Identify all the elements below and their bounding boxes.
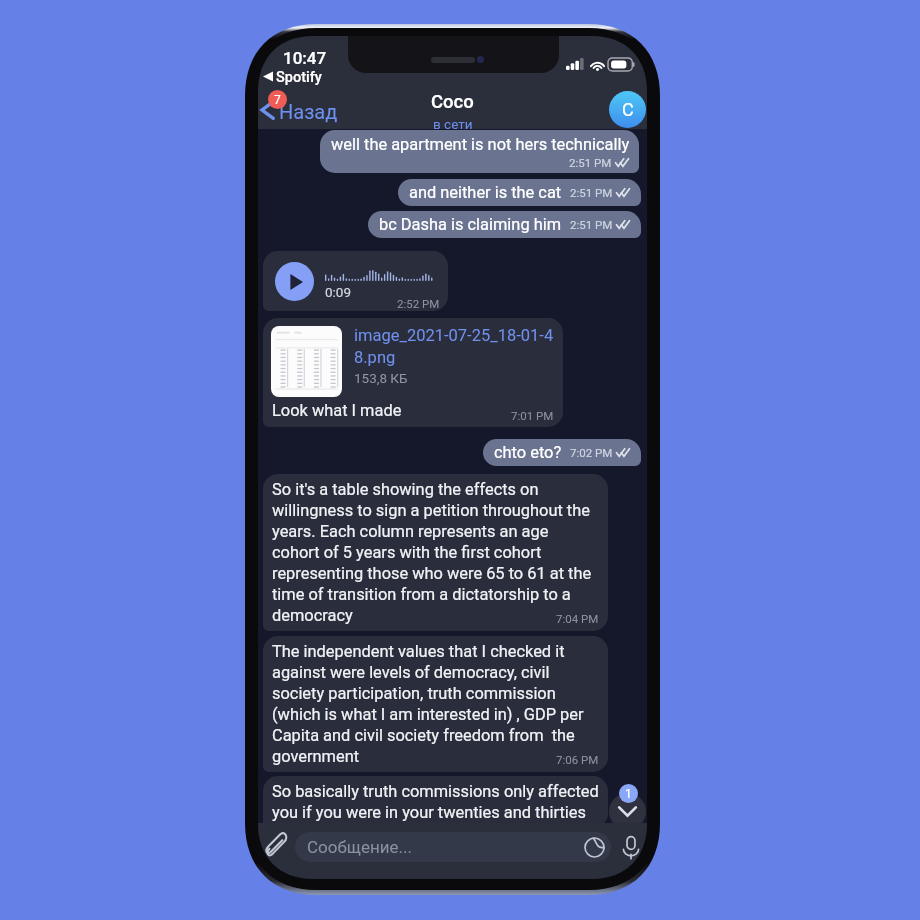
- button[interactable]: Scroll to bottom: [609, 793, 646, 830]
- staticText: Coco: [431, 91, 474, 113]
- button[interactable]: Play voice message: [263, 251, 448, 311]
- button[interactable]: Сообщение...: [295, 832, 611, 862]
- button[interactable]: bc Dasha is claiming him: [368, 211, 641, 238]
- staticText: Look what I made: [272, 401, 402, 420]
- staticText: 7:02 PM: [570, 446, 613, 459]
- button[interactable]: So basically truth commissions only affe…: [263, 776, 608, 828]
- button[interactable]: Record voice message: [616, 832, 646, 862]
- staticText: 10:47: [283, 48, 327, 68]
- staticText: 2:51 PM: [570, 218, 613, 231]
- button[interactable]: Назад: [258, 94, 338, 124]
- button[interactable]: Stickers: [581, 834, 607, 860]
- staticText: So basically truth commissions only affe…: [272, 782, 599, 822]
- staticText: Spotify: [276, 69, 322, 86]
- button[interactable]: The independent values that I checked it…: [263, 636, 608, 772]
- button[interactable]: Attach file: [260, 830, 290, 860]
- staticText: 7:04 PM: [556, 612, 599, 625]
- staticText: 153,8 КБ: [354, 370, 408, 386]
- staticText: chto eto?: [494, 443, 562, 462]
- staticText: 1: [625, 787, 632, 801]
- staticText: Сообщение...: [307, 837, 412, 857]
- button[interactable]: well the apartment is not hers technical…: [320, 130, 639, 173]
- staticText: So it's a table showing the effects on w…: [272, 480, 599, 625]
- button[interactable]: image_2021-07-25_18-01-48.png: [263, 318, 563, 427]
- button[interactable]: So it's a table showing the effects on w…: [263, 474, 608, 631]
- staticText: в сети: [433, 116, 473, 132]
- staticText: bc Dasha is claiming him: [379, 215, 562, 234]
- button[interactable]: Profile: [609, 91, 646, 128]
- button[interactable]: Play voice message: [275, 262, 314, 301]
- staticText: 2:52 PM: [397, 297, 440, 310]
- button[interactable]: and neither is the cat: [398, 179, 641, 206]
- staticText: image_2021-07-25_18-01-48.png: [354, 326, 554, 367]
- button[interactable]: chto eto?: [483, 439, 641, 466]
- staticText: well the apartment is not hers technical…: [331, 135, 630, 154]
- staticText: C: [622, 99, 634, 120]
- staticText: 2:51 PM: [570, 186, 613, 199]
- staticText: The independent values that I checked it…: [272, 642, 599, 766]
- staticText: 2:51 PM: [569, 156, 612, 169]
- staticText: Назад: [279, 100, 338, 123]
- staticText: 7:01 PM: [511, 409, 554, 422]
- staticText: 7:06 PM: [556, 753, 599, 766]
- staticText: 7: [274, 93, 281, 107]
- staticText: 0:09: [325, 284, 352, 300]
- staticText: and neither is the cat: [409, 183, 562, 202]
